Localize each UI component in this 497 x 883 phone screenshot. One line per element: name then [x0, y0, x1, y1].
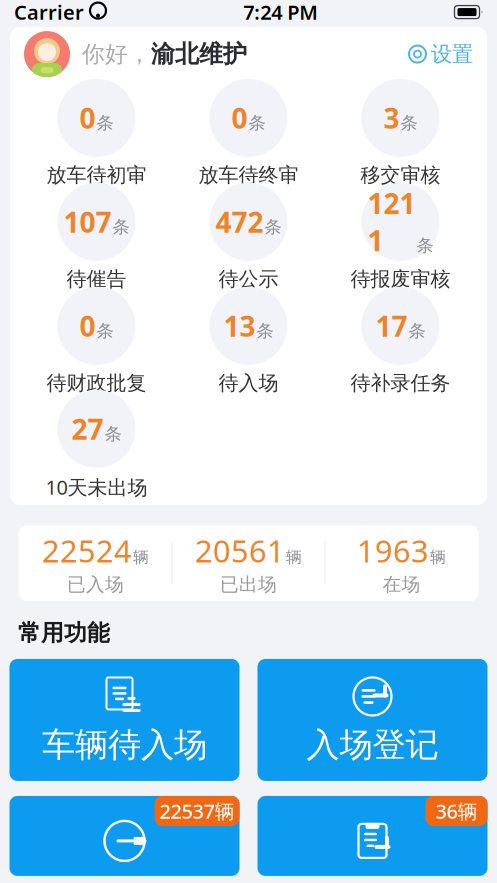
staticText: 车辆待入场	[42, 724, 207, 765]
staticText: 条	[104, 423, 121, 444]
staticText: 条	[416, 235, 433, 256]
staticText: 待公示	[218, 267, 278, 291]
button[interactable]: 0	[172, 81, 324, 185]
staticText: 条	[400, 112, 417, 133]
staticText: Carrier	[14, 0, 84, 25]
button[interactable]: Profile	[24, 31, 70, 77]
staticText: 0	[231, 99, 247, 136]
staticText: 已入场	[67, 573, 124, 596]
button[interactable]: 设置	[408, 41, 473, 67]
staticText: 0	[79, 99, 95, 136]
staticText: 放车待终审	[198, 163, 298, 187]
staticText: 移交审核	[360, 163, 440, 187]
staticText: 待报废审核	[350, 267, 450, 291]
button[interactable]: 36辆	[257, 796, 487, 876]
staticText: 条	[256, 320, 273, 341]
button[interactable]: 472	[172, 185, 324, 289]
staticText: 你好，	[82, 40, 151, 68]
button[interactable]: 22537辆	[9, 796, 239, 876]
staticText: 辆	[430, 547, 446, 567]
staticText: 辆	[133, 547, 149, 567]
staticText: 待补录任务	[350, 371, 450, 395]
staticText: 22537辆	[159, 798, 234, 824]
staticText: 36辆	[435, 798, 477, 824]
staticText: 7:24 PM	[243, 0, 318, 25]
staticText: 22524	[42, 530, 132, 571]
staticText: 在场	[382, 573, 420, 596]
staticText: 条	[96, 320, 113, 341]
staticText: 渝北维护	[151, 39, 247, 69]
button[interactable]: 0	[20, 289, 172, 393]
staticText: 辆	[286, 547, 302, 567]
staticText: 条	[112, 216, 129, 237]
staticText: 107	[63, 203, 111, 240]
staticText: 待财政批复	[46, 371, 146, 395]
staticText: 0	[79, 307, 95, 344]
button[interactable]: 入场登记	[257, 659, 487, 781]
button[interactable]: 3	[324, 81, 476, 185]
staticText: 27	[71, 410, 103, 447]
button[interactable]: 27	[20, 393, 172, 497]
staticText: 13	[223, 307, 255, 344]
staticText: 入场登记	[306, 724, 438, 765]
button[interactable]: 107	[20, 185, 172, 289]
staticText: 待入场	[218, 371, 278, 395]
staticText: 条	[248, 112, 265, 133]
staticText: 1211	[367, 185, 415, 259]
button[interactable]: 13	[172, 289, 324, 393]
button[interactable]: 车辆待入场	[9, 659, 239, 781]
staticText: 放车待初审	[46, 163, 146, 187]
staticText: 条	[408, 320, 425, 341]
staticText: 已出场	[220, 573, 277, 596]
staticText: 10天未出场	[45, 474, 147, 500]
staticText: 条	[96, 112, 113, 133]
staticText: 17	[375, 307, 407, 344]
staticText: 常用功能	[18, 619, 110, 647]
button[interactable]: 17	[324, 289, 476, 393]
button[interactable]: 1211	[324, 185, 476, 289]
button[interactable]: 22524	[19, 532, 171, 594]
staticText: 472	[215, 203, 263, 240]
staticText: 1963	[357, 530, 429, 571]
staticText: 待催告	[66, 267, 126, 291]
button[interactable]: 0	[20, 81, 172, 185]
button[interactable]: 1963	[325, 532, 477, 594]
button[interactable]: 20561	[172, 532, 324, 594]
staticText: 20561	[195, 530, 285, 571]
staticText: 设置	[431, 41, 473, 67]
staticText: 3	[383, 99, 399, 136]
staticText: 条	[264, 216, 281, 237]
